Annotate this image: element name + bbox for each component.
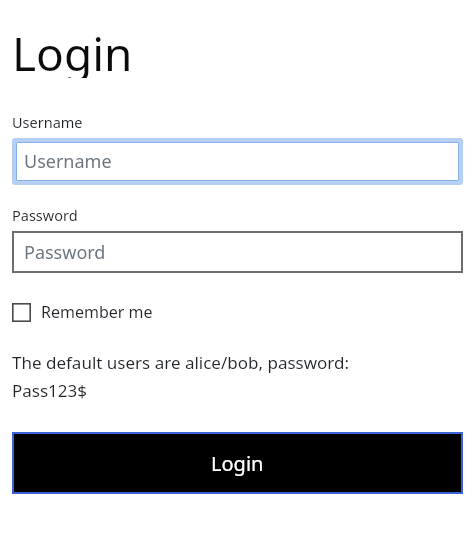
staticText: Login <box>211 450 264 477</box>
staticText: Password <box>12 205 78 225</box>
button[interactable]: Remember me <box>12 299 161 325</box>
staticText: Username <box>12 112 83 132</box>
button[interactable]: Login <box>12 432 463 494</box>
staticText: Password <box>24 240 106 265</box>
button[interactable]: Username <box>16 142 459 181</box>
staticText: Login <box>12 22 133 78</box>
staticText: Remember me <box>41 301 153 323</box>
staticText: The default users are alice/bob, passwor… <box>12 351 350 402</box>
button[interactable]: Password <box>12 231 463 273</box>
staticText: Username <box>24 149 112 174</box>
